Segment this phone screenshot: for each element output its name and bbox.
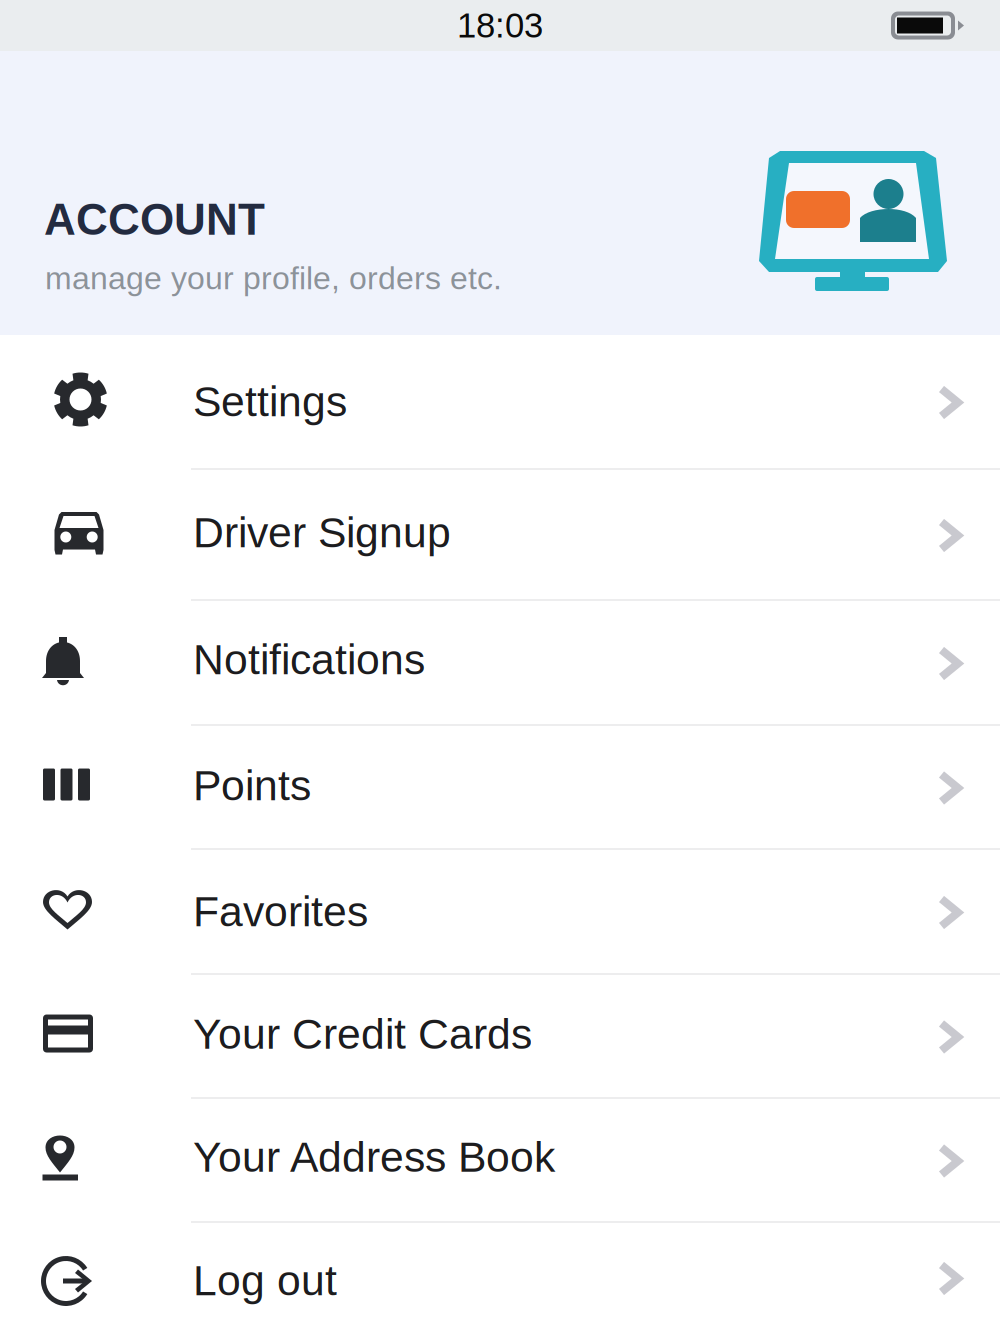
staticText: Points: [193, 762, 311, 809]
button[interactable]: Notifications: [0, 601, 1000, 726]
staticText: ACCOUNT: [44, 195, 265, 244]
staticText: Driver Signup: [193, 509, 451, 556]
staticText: Settings: [193, 378, 347, 425]
button[interactable]: Driver Signup: [0, 470, 1000, 601]
staticText: Your Credit Cards: [193, 1010, 532, 1058]
button[interactable]: Your Address Book: [0, 1099, 1000, 1223]
staticText: 18:03: [457, 6, 543, 45]
staticText: Favorites: [193, 888, 368, 935]
button[interactable]: Your Credit Cards: [0, 975, 1000, 1099]
staticText: Log out: [193, 1257, 337, 1304]
staticText: Your Address Book: [193, 1133, 555, 1181]
button[interactable]: Settings: [0, 335, 1000, 470]
button[interactable]: Points: [0, 726, 1000, 850]
staticText: Notifications: [193, 636, 425, 683]
button[interactable]: Favorites: [0, 850, 1000, 975]
staticText: manage your profile, orders etc.: [45, 260, 502, 296]
button[interactable]: Log out: [0, 1223, 1000, 1334]
